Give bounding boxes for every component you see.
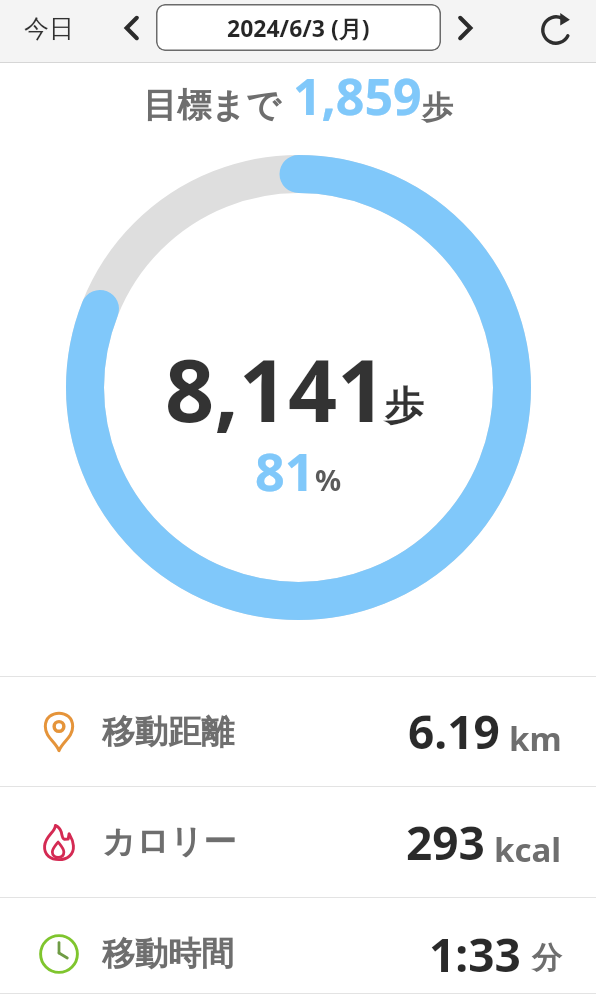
staticText: 2024/6/3 (月) [227,12,370,43]
staticText: 293 [406,811,485,874]
button[interactable]: 移動時間 [0,898,596,1000]
staticText: 6.19 [408,700,500,763]
staticText: 1:33 [429,923,521,986]
staticText: km [509,716,562,761]
button[interactable]: Next day [437,0,493,59]
staticText: 歩 [422,88,453,127]
staticText: 81 [255,435,315,506]
staticText: 8,141 [165,330,387,447]
staticText: 移動時間 [102,933,234,975]
staticText: カロリー [102,821,237,863]
button[interactable]: 2024/6/3 (月) [156,4,441,51]
staticText: 1,859 [293,62,422,130]
staticText: 目標まで [143,84,281,127]
button[interactable]: カロリー [0,787,596,897]
button[interactable]: 今日 [5,0,93,56]
staticText: 今日 [24,13,74,44]
button[interactable]: Refresh [526,0,586,61]
button[interactable]: 移動距離 [0,677,596,786]
button[interactable]: Previous day [104,0,160,59]
staticText: 移動距離 [102,711,234,753]
staticText: % [315,460,342,499]
staticText: 分 [532,939,562,977]
staticText: kcal [494,827,562,872]
staticText: 歩 [385,381,424,430]
